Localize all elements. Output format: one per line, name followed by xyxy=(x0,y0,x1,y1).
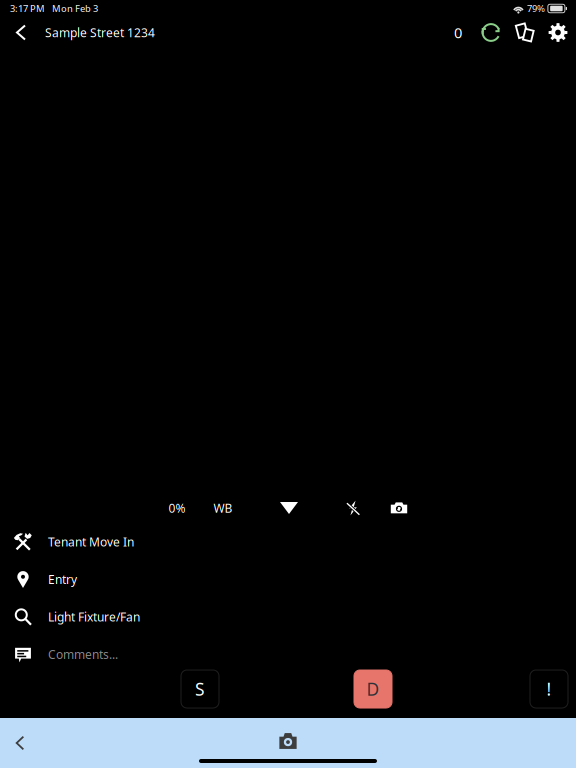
button[interactable]: Back xyxy=(3,723,37,763)
staticText: S xyxy=(195,677,205,700)
staticText: 0 xyxy=(454,23,462,42)
button[interactable]: Entry xyxy=(0,560,576,598)
staticText: D xyxy=(366,677,379,700)
button[interactable]: Switch camera xyxy=(384,495,414,521)
button[interactable]: Photos xyxy=(508,17,542,48)
staticText: Comments... xyxy=(48,646,118,662)
button[interactable]: S xyxy=(181,670,219,708)
staticText: 79% xyxy=(527,2,545,15)
staticText: Sample Street 1234 xyxy=(45,24,155,40)
staticText: 3:17 PM xyxy=(10,2,45,15)
staticText: Tenant Move In xyxy=(48,534,134,550)
button[interactable]: Comments... xyxy=(0,635,576,673)
button[interactable]: WB xyxy=(204,495,242,521)
staticText: Mon Feb 3 xyxy=(52,2,98,15)
button[interactable]: Light Fixture/Fan xyxy=(0,598,576,635)
staticText: Entry xyxy=(48,571,77,587)
button[interactable]: Back xyxy=(0,17,39,48)
button[interactable]: Tenant Move In xyxy=(0,523,576,560)
button[interactable]: D xyxy=(354,670,392,708)
button[interactable]: More options xyxy=(270,495,308,521)
button[interactable]: Camera xyxy=(271,724,305,758)
button[interactable]: Sync xyxy=(474,17,508,48)
button[interactable]: Flash off xyxy=(338,495,368,521)
button[interactable]: 0% xyxy=(158,495,196,521)
button[interactable]: ! xyxy=(530,670,568,708)
staticText: ! xyxy=(546,677,551,700)
staticText: Light Fixture/Fan xyxy=(48,609,140,625)
button[interactable]: Settings xyxy=(542,17,574,48)
staticText: WB xyxy=(213,500,232,516)
staticText: 0% xyxy=(168,500,185,516)
